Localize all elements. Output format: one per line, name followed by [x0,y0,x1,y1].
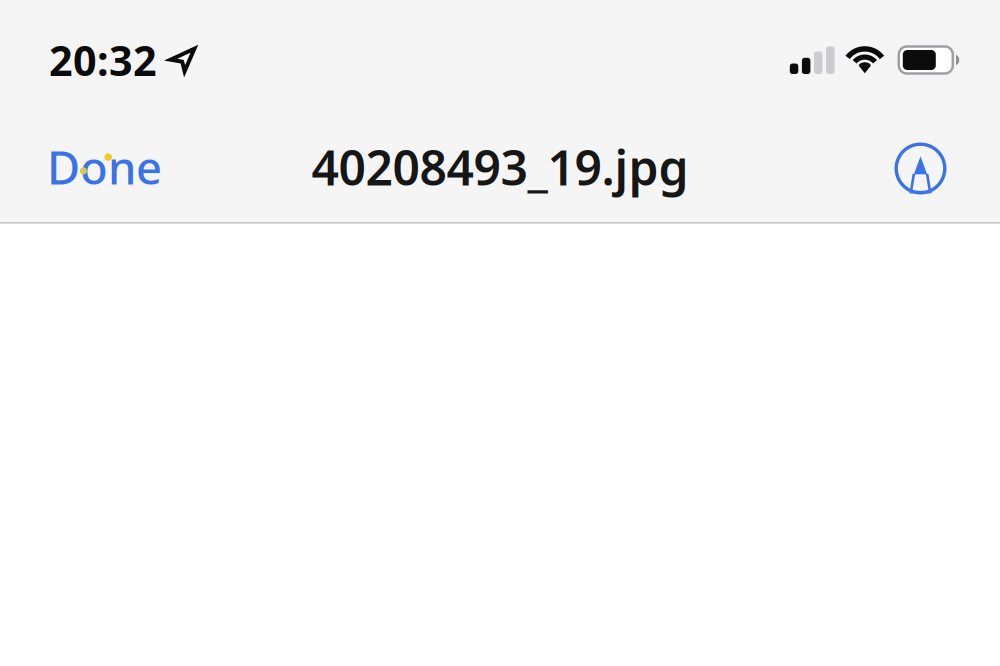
staticText: 20:32 [49,33,157,87]
button[interactable]: Markup [880,139,946,194]
staticText: 40208493_19.jpg [311,135,688,199]
staticText: Done [47,137,162,197]
button[interactable]: Done [47,127,176,207]
